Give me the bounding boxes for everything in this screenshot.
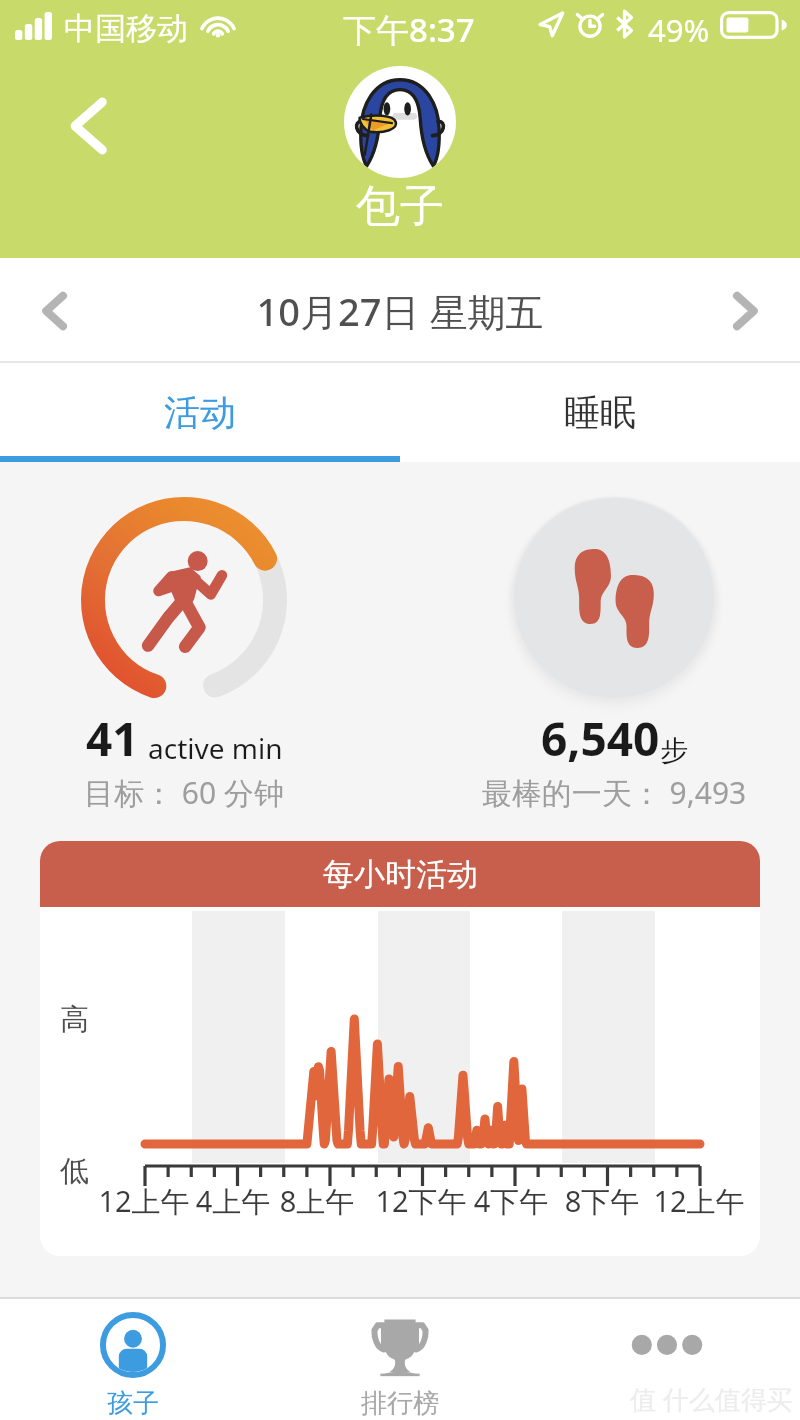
staticText: 孩子	[107, 1387, 159, 1420]
staticText: 12上午	[54, 1181, 234, 1221]
staticText: 每小时活动	[323, 855, 478, 894]
button[interactable]: 睡眠	[400, 363, 800, 462]
button[interactable]: 孩子	[0, 1297, 266, 1420]
button[interactable]: Previous day	[0, 258, 110, 363]
staticText: 6,540	[541, 707, 660, 770]
staticText: 下午8:37	[343, 7, 475, 52]
staticText: 8下午	[512, 1181, 692, 1221]
staticText: 目标： 60 分钟	[0, 772, 368, 813]
button[interactable]: More	[533, 1297, 800, 1420]
staticText: 4上午	[143, 1181, 323, 1221]
staticText: 12下午	[331, 1181, 511, 1221]
staticText: 41	[86, 707, 139, 770]
staticText: 12上午	[609, 1181, 760, 1221]
staticText: 最棒的一天： 9,493	[430, 772, 798, 813]
staticText: 10月27日 星期五	[110, 285, 690, 337]
staticText: 低	[60, 1153, 89, 1190]
staticText: 4下午	[421, 1181, 601, 1221]
staticText: 值 什么值得买	[630, 1381, 793, 1417]
staticText: 8上午	[227, 1181, 407, 1221]
staticText: active min	[148, 729, 283, 767]
button[interactable]: Back	[48, 86, 128, 166]
staticText: 包子	[356, 179, 444, 234]
staticText: 活动	[164, 390, 236, 435]
staticText: 中国移动	[64, 9, 188, 48]
button[interactable]: Next day	[690, 258, 800, 363]
staticText: 49%	[648, 9, 710, 51]
staticText: 步	[660, 733, 688, 768]
button[interactable]: 活动	[0, 363, 400, 462]
staticText: 高	[60, 1001, 89, 1038]
button[interactable]: 排行榜	[266, 1297, 533, 1420]
staticText: 睡眠	[564, 390, 636, 435]
staticText: 排行榜	[361, 1387, 439, 1420]
